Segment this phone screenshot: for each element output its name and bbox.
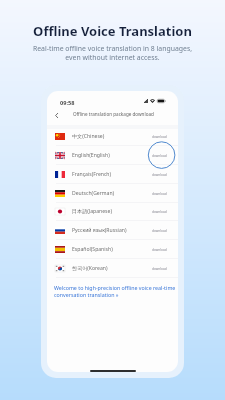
button[interactable]: Français(French) <box>47 165 178 184</box>
button[interactable]: Back <box>50 109 62 121</box>
staticText: 한국어(Korean) <box>72 265 108 272</box>
button[interactable]: 한국어(Korean) <box>47 259 178 278</box>
staticText: Offline translation package download <box>73 111 154 117</box>
staticText: download <box>152 229 167 233</box>
staticText: download <box>152 135 167 139</box>
button[interactable]: Русский язык(Russian) <box>47 221 178 240</box>
staticText: 09:58 <box>60 99 75 107</box>
staticText: download <box>152 267 167 271</box>
staticText: download <box>152 210 167 214</box>
staticText: download <box>152 173 167 177</box>
button[interactable]: Deutsch(German) <box>47 184 178 203</box>
staticText: Français(French) <box>72 171 112 178</box>
staticText: Deutsch(German) <box>72 190 115 197</box>
staticText: Offline Voice Translation <box>0 22 225 40</box>
staticText: 中文(Chinese) <box>72 133 105 140</box>
staticText: download <box>152 154 167 158</box>
button[interactable]: 日本語(Japanese) <box>47 202 178 221</box>
staticText: download <box>152 248 167 252</box>
staticText: Real-time offline voice translation in 8… <box>0 44 225 62</box>
button[interactable]: 中文(Chinese) <box>47 127 178 146</box>
button[interactable]: English(English) <box>47 146 178 165</box>
staticText: English(English) <box>72 152 110 159</box>
staticText: Español(Spanish) <box>72 246 113 253</box>
staticText: 日本語(Japanese) <box>72 208 112 215</box>
staticText: download <box>152 192 167 196</box>
staticText: Русский язык(Russian) <box>72 227 127 234</box>
staticText: Welcome to high-precision offline voice … <box>54 284 176 299</box>
button[interactable]: Español(Spanish) <box>47 240 178 259</box>
